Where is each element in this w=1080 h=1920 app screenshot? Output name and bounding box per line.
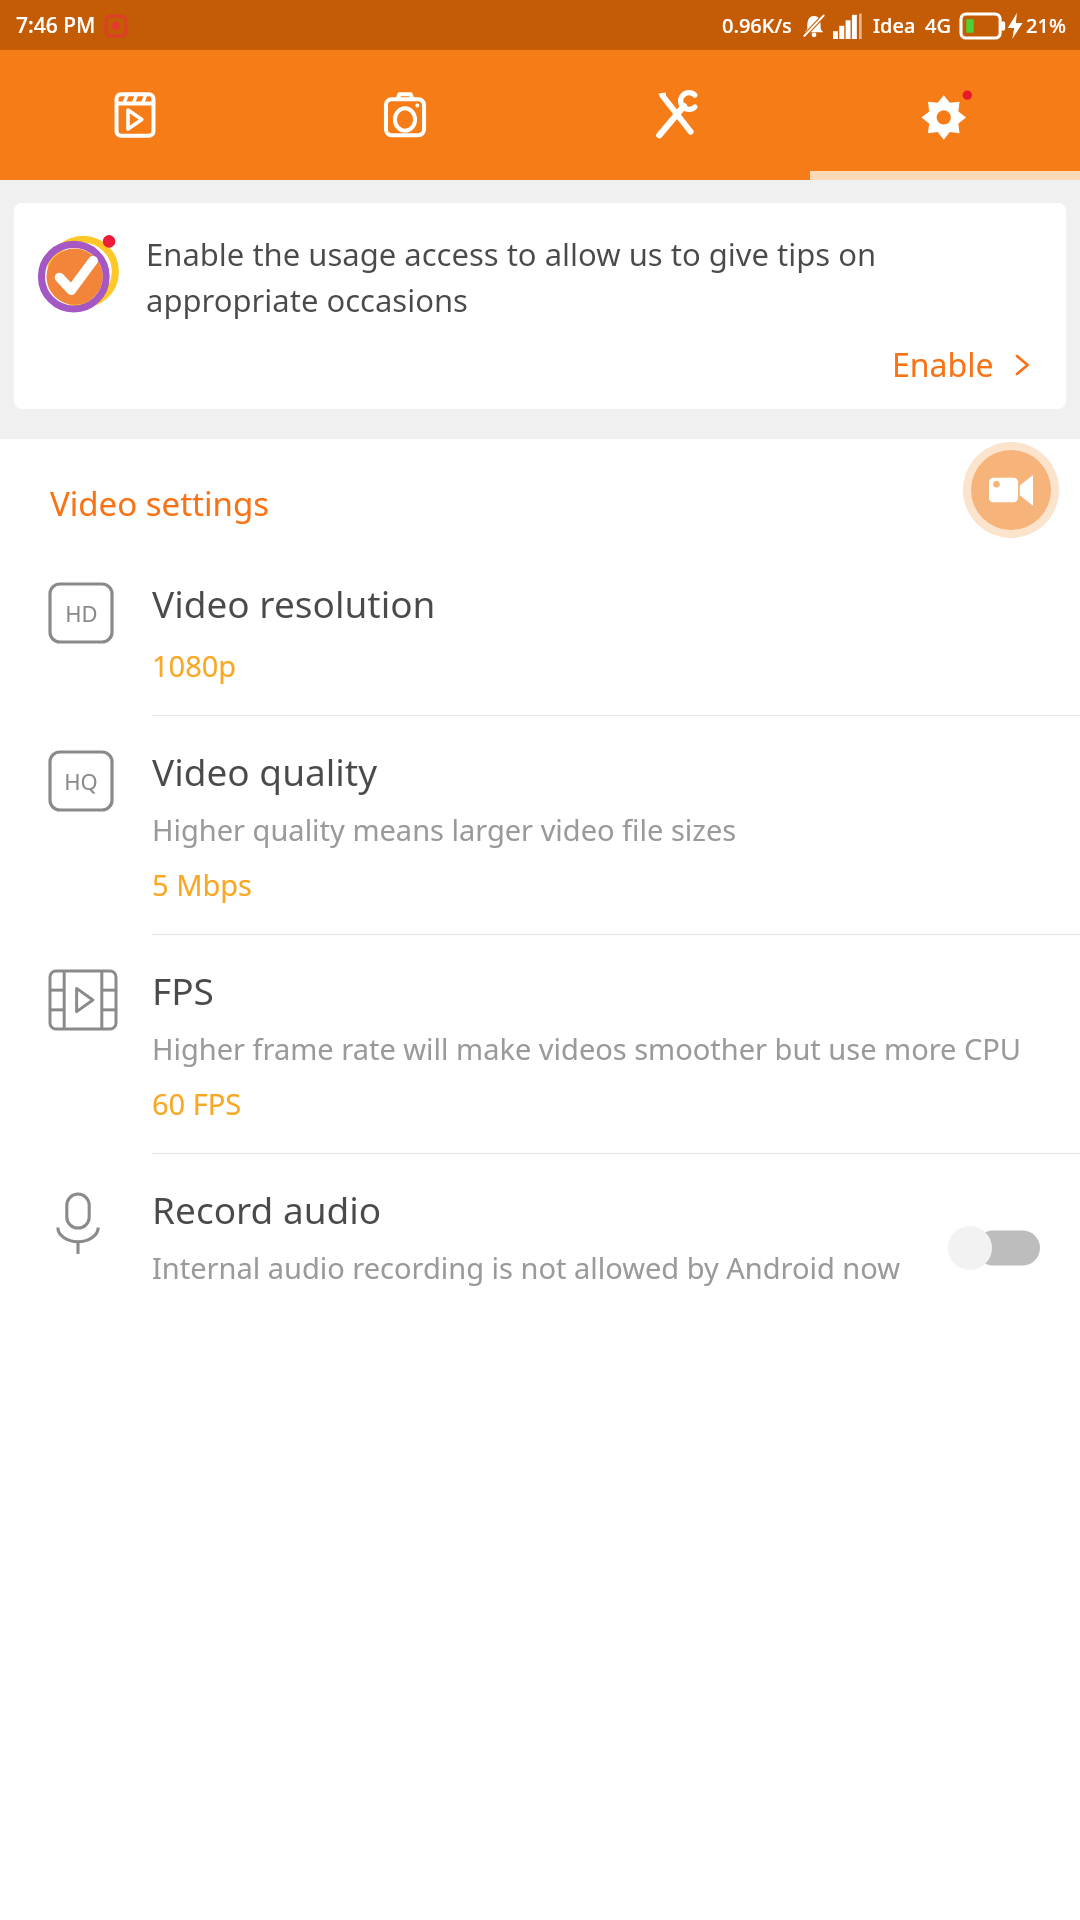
staticText: 7:46 PM bbox=[16, 11, 96, 40]
button[interactable]: Record audio toggle bbox=[948, 1226, 1040, 1270]
button[interactable]: Tools bbox=[540, 50, 810, 180]
button[interactable]: FPS bbox=[0, 935, 1080, 1153]
staticText: HD bbox=[65, 598, 98, 628]
staticText: Enable the usage access to allow us to g… bbox=[146, 233, 1042, 321]
button[interactable]: Camera bbox=[270, 50, 540, 180]
staticText: 0.96K/s bbox=[722, 12, 792, 39]
button[interactable]: Enable bbox=[886, 339, 1042, 391]
staticText: HQ bbox=[64, 766, 98, 796]
staticText: Video resolution bbox=[152, 578, 436, 628]
staticText: Video settings bbox=[50, 481, 270, 526]
staticText: 1080p bbox=[152, 646, 237, 685]
button[interactable]: Start recording bbox=[963, 442, 1059, 538]
staticText: Enable bbox=[892, 343, 994, 387]
button[interactable]: Record audio bbox=[0, 1154, 1080, 1317]
staticText: Higher frame rate will make videos smoot… bbox=[152, 1029, 1022, 1068]
staticText: 5 Mbps bbox=[152, 865, 252, 904]
staticText: Record audio bbox=[152, 1184, 382, 1234]
button[interactable]: Enable the usage access to allow us to g… bbox=[14, 203, 1066, 409]
button[interactable]: Videos bbox=[0, 50, 270, 180]
button[interactable]: Settings bbox=[810, 50, 1080, 180]
staticText: 21% bbox=[1026, 12, 1066, 39]
staticText: 4G bbox=[925, 12, 951, 39]
button[interactable]: HD bbox=[0, 548, 1080, 715]
staticText: Video quality bbox=[152, 746, 378, 796]
staticText: Idea bbox=[873, 12, 916, 39]
staticText: Internal audio recording is not allowed … bbox=[152, 1248, 901, 1287]
staticText: FPS bbox=[152, 965, 214, 1015]
staticText: 60 FPS bbox=[152, 1084, 242, 1123]
button[interactable]: HQ bbox=[0, 716, 1080, 934]
staticText: Higher quality means larger video file s… bbox=[152, 810, 737, 849]
